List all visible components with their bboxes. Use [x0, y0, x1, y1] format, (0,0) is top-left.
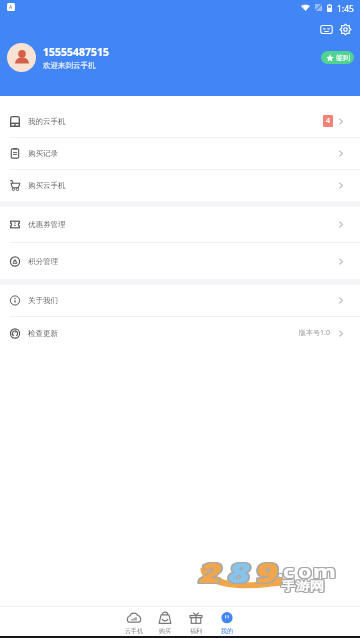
staticText: A	[9, 4, 13, 11]
staticText: m	[313, 560, 336, 585]
button[interactable]: 积分管理	[0, 243, 360, 279]
button[interactable]: 关于我们	[0, 285, 360, 316]
staticText: 手游网	[281, 579, 324, 594]
staticText: 15555487515	[43, 45, 110, 59]
staticText: 9	[257, 554, 281, 592]
button[interactable]: Messages	[320, 23, 333, 36]
staticText: 积分管理	[28, 257, 58, 266]
staticText: 购买记录	[28, 149, 58, 158]
staticText: c	[284, 559, 296, 584]
staticText: 手游网	[280, 578, 323, 593]
staticText: .	[277, 559, 282, 582]
staticText: o	[299, 558, 314, 583]
staticText: 2	[202, 552, 225, 590]
staticText: 购买云手机	[28, 181, 66, 190]
staticText: o	[299, 560, 314, 585]
button[interactable]: Settings	[339, 23, 352, 36]
staticText: 1:45	[337, 3, 354, 15]
staticText: m	[314, 559, 338, 584]
staticText: c	[283, 559, 295, 584]
staticText: 9	[257, 552, 281, 590]
staticText: 8	[228, 554, 251, 592]
staticText: 我的云手机	[28, 117, 66, 126]
staticText: m	[313, 558, 336, 583]
staticText: c	[282, 560, 294, 585]
button[interactable]: 签到	[321, 51, 354, 64]
staticText: 关于我们	[28, 296, 58, 305]
staticText: 福利	[190, 627, 202, 635]
staticText: 8	[228, 552, 251, 590]
button[interactable]: 福利	[180, 609, 211, 635]
staticText: 手游网	[282, 579, 325, 594]
staticText: 2	[202, 554, 225, 592]
staticText: 9	[256, 554, 279, 592]
staticText: m	[314, 558, 338, 583]
staticText: o	[298, 559, 312, 584]
staticText: 云手机	[125, 627, 143, 635]
staticText: 8	[230, 552, 253, 590]
staticText: o	[297, 560, 311, 585]
staticText: 欢迎来到云手机	[43, 61, 96, 70]
staticText: 9	[256, 553, 279, 591]
staticText: .	[279, 558, 284, 581]
staticText: m	[312, 558, 335, 583]
staticText: c	[282, 558, 294, 583]
staticText: 2	[198, 552, 222, 590]
staticText: o	[299, 559, 314, 584]
staticText: 4	[326, 116, 331, 126]
staticText: m	[314, 560, 338, 585]
button[interactable]: 购买记录	[0, 138, 360, 169]
staticText: 8	[226, 554, 250, 592]
staticText: 2	[202, 553, 225, 591]
staticText: 检查更新	[28, 329, 58, 338]
button[interactable]: 检查更新	[0, 317, 360, 349]
staticText: 2	[200, 552, 223, 590]
button[interactable]: 优惠券管理	[0, 207, 360, 242]
staticText: 8	[226, 553, 250, 591]
staticText: .	[277, 560, 282, 583]
staticText: c	[282, 559, 294, 584]
staticText: 2	[198, 553, 222, 591]
button[interactable]: 我的	[211, 609, 242, 635]
staticText: 2	[200, 553, 223, 591]
staticText: .	[278, 560, 283, 583]
button[interactable]: 购买	[149, 609, 180, 635]
staticText: 8	[230, 553, 253, 591]
staticText: o	[297, 559, 311, 584]
staticText: 9	[256, 552, 279, 590]
staticText: .	[278, 558, 283, 581]
staticText: 签到	[336, 53, 350, 62]
staticText: c	[283, 558, 295, 583]
staticText: 手游网	[282, 578, 325, 593]
staticText: m	[312, 560, 335, 585]
staticText: 优惠券管理	[28, 220, 66, 229]
staticText: 版本号1.0	[299, 328, 330, 338]
staticText: 8	[226, 552, 250, 590]
staticText: 8	[230, 554, 253, 592]
staticText: .	[279, 560, 284, 583]
button[interactable]: 云手机	[118, 609, 149, 635]
staticText: m	[312, 559, 335, 584]
staticText: 手游网	[280, 579, 323, 594]
staticText: 购买	[159, 627, 171, 635]
staticText: .	[277, 558, 282, 581]
staticText: 手游网	[281, 577, 324, 592]
staticText: o	[297, 558, 311, 583]
staticText: c	[283, 560, 295, 585]
staticText: 9	[254, 552, 278, 590]
staticText: m	[313, 559, 336, 584]
staticText: 2	[198, 554, 222, 592]
staticText: 手游网	[281, 578, 324, 593]
staticText: .	[278, 559, 283, 582]
staticText: o	[298, 558, 312, 583]
staticText: c	[284, 558, 296, 583]
staticText: 9	[257, 553, 281, 591]
staticText: 9	[254, 553, 278, 591]
staticText: .	[279, 559, 284, 582]
button[interactable]: 我的云手机	[0, 105, 360, 137]
staticText: 手游网	[282, 577, 325, 592]
button[interactable]: 15555487515	[7, 43, 110, 72]
staticText: o	[298, 560, 312, 585]
staticText: 8	[228, 553, 251, 591]
button[interactable]: 购买云手机	[0, 170, 360, 201]
